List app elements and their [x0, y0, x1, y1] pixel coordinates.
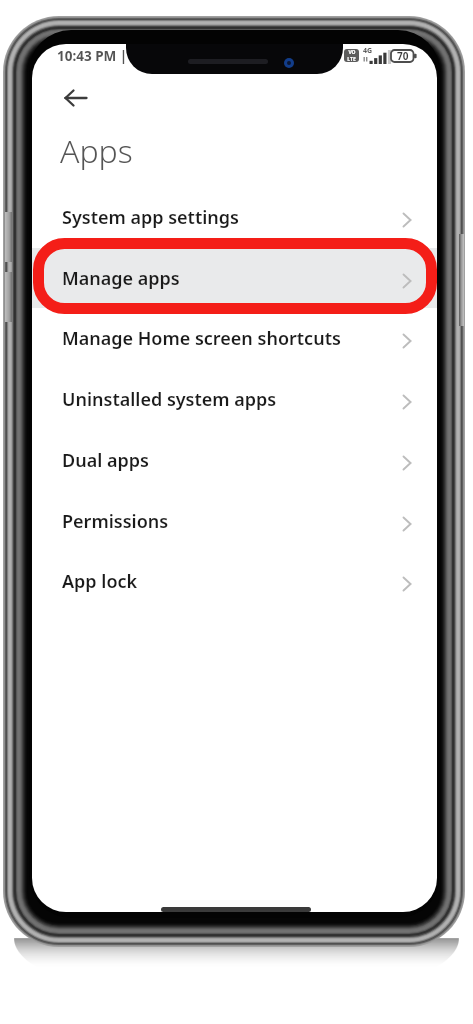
staticText: LTE — [347, 56, 356, 62]
staticText: 10:43 PM | 0 — [57, 47, 139, 65]
button[interactable]: App lock — [32, 551, 437, 611]
staticText: Manage apps — [62, 266, 180, 291]
button[interactable]: Permissions — [32, 491, 437, 551]
staticText: 70 — [397, 49, 409, 63]
staticText: Dual apps — [62, 448, 149, 473]
staticText: Permissions — [62, 509, 169, 534]
button[interactable]: Manage apps — [32, 248, 437, 308]
button[interactable]: System app settings — [32, 187, 437, 247]
button[interactable]: Dual apps — [32, 430, 437, 490]
staticText: Uninstalled system apps — [62, 387, 277, 412]
staticText: System app settings — [62, 205, 239, 230]
staticText: VO — [348, 49, 356, 56]
staticText: Manage Home screen shortcuts — [62, 326, 341, 351]
staticText: App lock — [62, 569, 138, 594]
staticText: Apps — [60, 129, 133, 173]
button[interactable]: Manage Home screen shortcuts — [32, 308, 437, 368]
button[interactable]: Uninstalled system apps — [32, 369, 437, 429]
button[interactable]: Back — [54, 76, 98, 120]
staticText: 4G — [363, 46, 373, 56]
